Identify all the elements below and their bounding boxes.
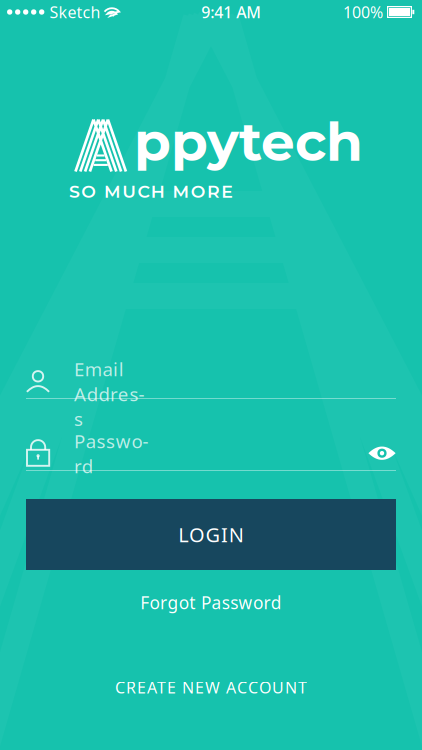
button[interactable]: Forgot Password <box>140 591 282 614</box>
staticText: Sketch <box>49 1 100 23</box>
staticText: Password <box>74 429 157 478</box>
button[interactable]: CREATE NEW ACCOUNT <box>115 677 307 698</box>
staticText: ppytech <box>134 109 363 174</box>
button[interactable]: Show password <box>368 444 396 462</box>
staticText: 100% <box>343 1 383 23</box>
staticText: CREATE NEW ACCOUNT <box>115 677 307 698</box>
staticText: Email Address <box>74 357 148 406</box>
staticText: 9:41 AM <box>201 1 261 23</box>
staticText: LOGIN <box>178 521 244 548</box>
staticText: Forgot Password <box>140 591 282 614</box>
staticText: SO MUCH MORE <box>69 181 233 202</box>
button[interactable]: LOGIN <box>26 499 396 570</box>
